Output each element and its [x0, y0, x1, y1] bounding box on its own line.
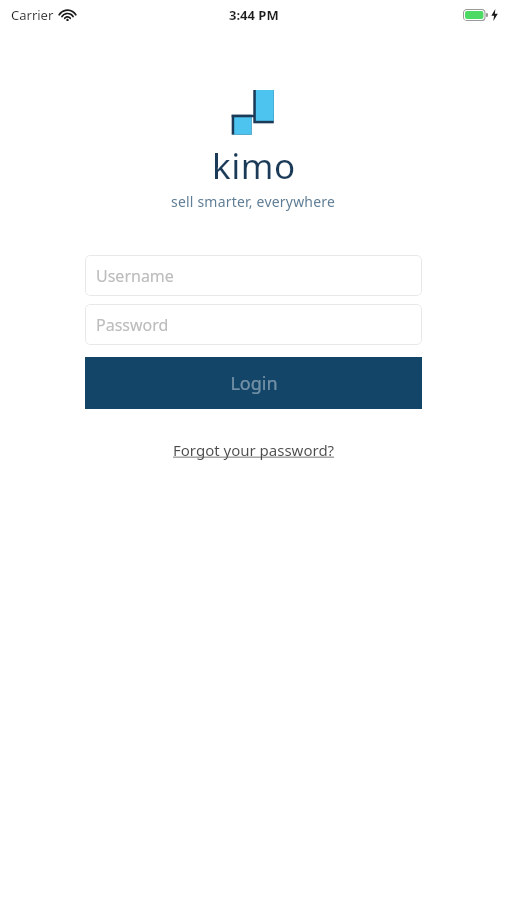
button[interactable]: Login	[85, 357, 422, 409]
button[interactable]: Username	[85, 255, 422, 296]
button[interactable]: Password	[85, 304, 422, 345]
staticText: Forgot your password?	[173, 440, 335, 460]
staticText: Login	[230, 371, 278, 396]
staticText: Username	[96, 265, 174, 287]
staticText: Password	[96, 314, 169, 336]
staticText: sell smarter, everywhere	[171, 192, 336, 211]
staticText: 3:44 PM	[229, 6, 279, 24]
staticText: kimo	[212, 142, 296, 190]
staticText: Carrier	[11, 6, 54, 24]
button[interactable]: Forgot your password?	[167, 436, 341, 464]
